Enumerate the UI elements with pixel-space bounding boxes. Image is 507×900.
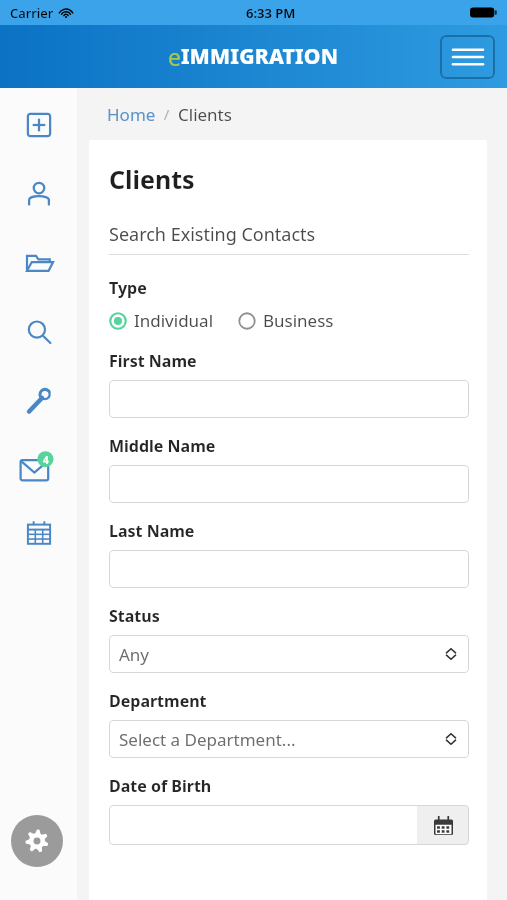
staticText: Clients (178, 103, 232, 126)
button[interactable]: Pick date (417, 805, 469, 845)
button[interactable]: Individual (109, 309, 214, 332)
staticText: First Name (109, 350, 197, 372)
staticText: Any (119, 643, 150, 666)
staticText: Type (109, 277, 147, 299)
staticText: e (168, 41, 181, 72)
button[interactable] (109, 465, 469, 503)
button[interactable]: Files (18, 242, 60, 284)
staticText: Date of Birth (109, 775, 212, 797)
staticText: 4 (43, 453, 49, 467)
staticText: Carrier (10, 4, 54, 22)
button[interactable]: Select a Department... (109, 720, 469, 758)
button[interactable]: Tools (18, 380, 60, 422)
staticText: Search Existing Contacts (109, 222, 316, 247)
button[interactable]: Settings (11, 815, 63, 867)
staticText: Middle Name (109, 435, 216, 457)
staticText: Department (109, 690, 207, 712)
button[interactable]: Search Existing Contacts (109, 222, 469, 255)
button[interactable]: Any (109, 635, 469, 673)
staticText: Status (109, 605, 160, 627)
button[interactable]: Business (238, 309, 334, 332)
button[interactable]: Home (107, 103, 156, 126)
staticText: Business (263, 309, 334, 332)
staticText: / (156, 104, 178, 124)
button[interactable] (109, 805, 417, 845)
staticText: Individual (134, 309, 214, 332)
button[interactable]: Calendar (18, 512, 60, 554)
staticText: Select a Department... (119, 728, 296, 751)
staticText: IMMIGRATION (181, 42, 339, 71)
button[interactable]: Messages, 4 unread (16, 444, 62, 490)
button[interactable]: Contacts (18, 173, 60, 215)
button[interactable]: Menu (440, 35, 495, 79)
staticText: Last Name (109, 520, 195, 542)
button[interactable] (109, 380, 469, 418)
button[interactable]: Search (18, 311, 60, 353)
button[interactable] (109, 550, 469, 588)
staticText: Home (107, 103, 156, 126)
staticText: Clients (109, 162, 195, 196)
button[interactable]: Add (18, 104, 60, 146)
staticText: 6:33 PM (246, 4, 296, 22)
